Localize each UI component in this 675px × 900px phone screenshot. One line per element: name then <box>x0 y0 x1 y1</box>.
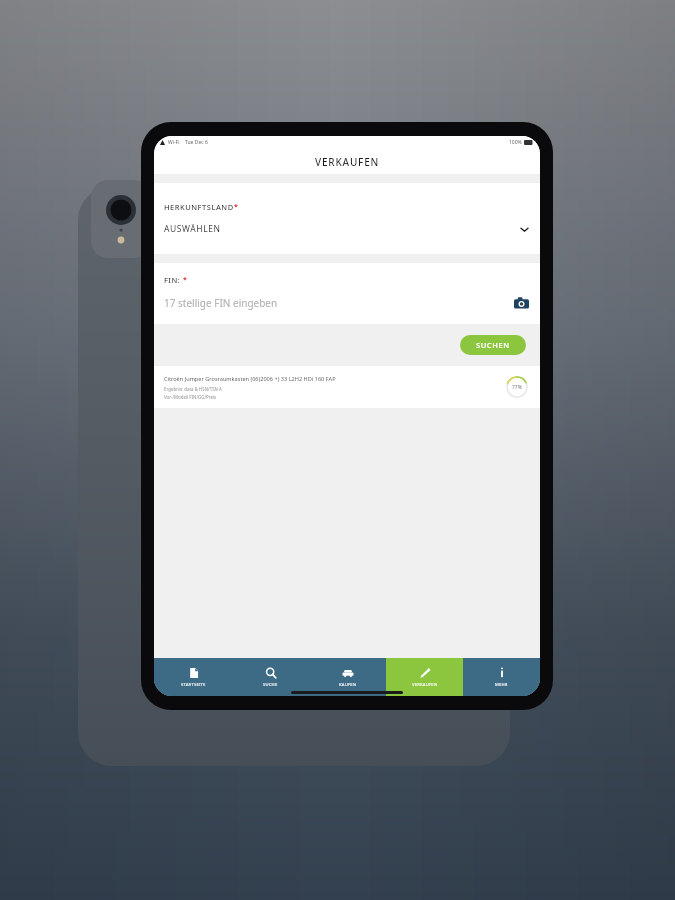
staticText: STARTSEITE <box>181 682 206 688</box>
staticText: AUSWÄHLEN <box>164 223 221 235</box>
button[interactable]: Citroën Jumper Grosraumkasten (06)2006 +… <box>154 366 540 408</box>
staticText: VERKAUFEN <box>315 155 380 169</box>
staticText: MEHR <box>495 682 508 688</box>
staticText: SUCHEN <box>476 340 510 350</box>
button[interactable]: SUCHE <box>232 658 309 696</box>
button[interactable]: KAUFEN <box>309 658 386 696</box>
other: Expand <box>519 224 530 235</box>
other: SUCHE <box>265 667 277 679</box>
other: KAUFEN <box>342 667 354 679</box>
button[interactable]: SUCHEN <box>460 335 526 355</box>
other: VERKAUFEN <box>419 667 431 679</box>
staticText: 100% <box>509 139 522 146</box>
staticText: * <box>183 275 187 285</box>
button[interactable]: 17 stellige FIN eingeben <box>164 294 530 312</box>
staticText: 17 stellige FIN eingeben <box>164 296 278 310</box>
staticText: Ergebnis: data & HSN/TSN A <box>164 386 222 392</box>
staticText: VERKAUFEN <box>412 682 438 688</box>
staticText: HERKUNFTSLAND <box>164 202 234 212</box>
staticText: FIN: <box>164 275 181 285</box>
button[interactable]: AUSWÄHLEN <box>164 223 530 235</box>
staticText: Citroën Jumper Grosraumkasten (06)2006 +… <box>164 375 336 383</box>
button[interactable]: STARTSEITE <box>154 658 232 696</box>
other: MEHR <box>496 667 508 679</box>
button[interactable]: Scan FIN with camera <box>512 294 530 312</box>
staticText: KAUFEN <box>339 682 357 688</box>
staticText: * <box>234 202 238 212</box>
button[interactable]: MEHR <box>463 658 540 696</box>
staticText: SUCHE <box>263 682 278 688</box>
staticText: Vor-/Modell FIN/GG/Preis <box>164 394 217 400</box>
staticText: Wi-Fi <box>168 139 180 146</box>
other: STARTSEITE <box>188 667 200 679</box>
button[interactable]: VERKAUFEN <box>386 658 463 696</box>
staticText: Tue Dec 6 <box>185 139 208 146</box>
staticText: 77% <box>512 384 522 391</box>
